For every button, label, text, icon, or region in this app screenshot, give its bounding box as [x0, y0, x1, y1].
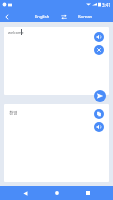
button[interactable]: Home: [46, 186, 67, 200]
staticText: 3:41: [102, 2, 111, 8]
button[interactable]: Listen translation: [94, 122, 104, 132]
button[interactable]: Clear: [94, 45, 104, 55]
staticText: Korean: [78, 14, 93, 20]
staticText: English: [35, 14, 50, 20]
staticText: welcome: [8, 30, 24, 35]
staticText: 환영: [9, 110, 18, 115]
button[interactable]: Copy: [94, 109, 104, 119]
button[interactable]: English: [26, 11, 58, 22]
button[interactable]: Swap languages: [58, 11, 70, 22]
button[interactable]: Korean: [70, 11, 100, 22]
button[interactable]: Listen: [94, 32, 104, 42]
button[interactable]: Back: [15, 186, 36, 200]
button[interactable]: Back: [0, 11, 13, 22]
button[interactable]: Translate: [94, 90, 106, 102]
button[interactable]: Recents: [77, 186, 98, 200]
